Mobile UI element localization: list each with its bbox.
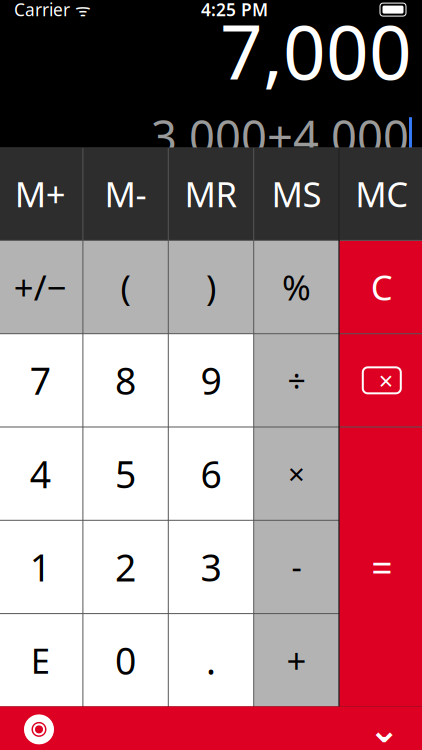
staticText: 4:25 PM bbox=[201, 0, 268, 21]
staticText: . bbox=[206, 635, 216, 685]
staticText: + bbox=[286, 637, 306, 683]
button[interactable]: Collapse keypad bbox=[360, 708, 408, 750]
staticText: 0 bbox=[115, 635, 136, 685]
button[interactable]: - bbox=[254, 521, 339, 613]
button[interactable]: 9 bbox=[169, 334, 253, 426]
staticText: = bbox=[371, 542, 392, 592]
button[interactable]: . bbox=[169, 614, 253, 706]
button[interactable]: +/− bbox=[0, 241, 82, 333]
staticText: 3 bbox=[200, 542, 221, 592]
staticText: % bbox=[282, 264, 311, 310]
staticText: ( bbox=[121, 264, 131, 310]
staticText: C bbox=[371, 264, 393, 310]
button[interactable]: + bbox=[254, 614, 339, 706]
staticText: 7,000 bbox=[220, 1, 412, 100]
button[interactable]: 7 bbox=[0, 334, 82, 426]
button[interactable]: MC bbox=[340, 148, 422, 240]
staticText: Carrier bbox=[14, 0, 70, 21]
button[interactable]: MR bbox=[169, 148, 253, 240]
staticText: 4 bbox=[30, 449, 51, 498]
button[interactable]: MS bbox=[254, 148, 339, 240]
staticText: MS bbox=[271, 171, 321, 217]
staticText: ) bbox=[206, 264, 216, 310]
button[interactable]: 5 bbox=[83, 427, 168, 520]
staticText: M+ bbox=[15, 171, 66, 217]
button[interactable]: % bbox=[254, 241, 339, 333]
button[interactable]: Delete bbox=[340, 334, 422, 426]
staticText: 1 bbox=[30, 542, 51, 592]
button[interactable]: ÷ bbox=[254, 334, 339, 426]
staticText: 2 bbox=[115, 542, 136, 592]
staticText: MC bbox=[355, 171, 408, 217]
staticText: × bbox=[379, 363, 393, 397]
button[interactable]: 2 bbox=[83, 521, 168, 613]
staticText: 8 bbox=[115, 356, 136, 405]
button[interactable]: ) bbox=[169, 241, 253, 333]
button[interactable]: 3 bbox=[169, 521, 253, 613]
button[interactable]: Settings bbox=[14, 706, 64, 750]
button[interactable]: E bbox=[0, 614, 82, 706]
staticText: × bbox=[288, 454, 305, 493]
button[interactable]: M+ bbox=[0, 148, 82, 240]
button[interactable]: 4 bbox=[0, 427, 82, 520]
staticText: ⌄ bbox=[368, 708, 399, 750]
button[interactable]: ( bbox=[83, 241, 168, 333]
button[interactable]: 1 bbox=[0, 521, 82, 613]
staticText: 9 bbox=[200, 356, 221, 405]
staticText: M- bbox=[105, 171, 147, 217]
button[interactable]: C bbox=[340, 241, 422, 333]
button[interactable]: M- bbox=[83, 148, 168, 240]
staticText: 6 bbox=[200, 449, 221, 498]
staticText: - bbox=[291, 546, 301, 588]
staticText: +/− bbox=[14, 264, 67, 310]
button[interactable]: 8 bbox=[83, 334, 168, 426]
button[interactable]: = bbox=[340, 427, 422, 706]
staticText: ᯤ bbox=[70, 0, 91, 21]
staticText: 5 bbox=[115, 449, 136, 498]
button[interactable]: 6 bbox=[169, 427, 253, 520]
staticText: 7 bbox=[30, 356, 51, 405]
button[interactable]: × bbox=[254, 427, 339, 520]
staticText: MR bbox=[184, 171, 237, 217]
staticText: ÷ bbox=[287, 359, 305, 402]
button[interactable]: 0 bbox=[83, 614, 168, 706]
staticText: E bbox=[31, 637, 50, 683]
staticText: 3,000+4,000 bbox=[151, 106, 409, 166]
